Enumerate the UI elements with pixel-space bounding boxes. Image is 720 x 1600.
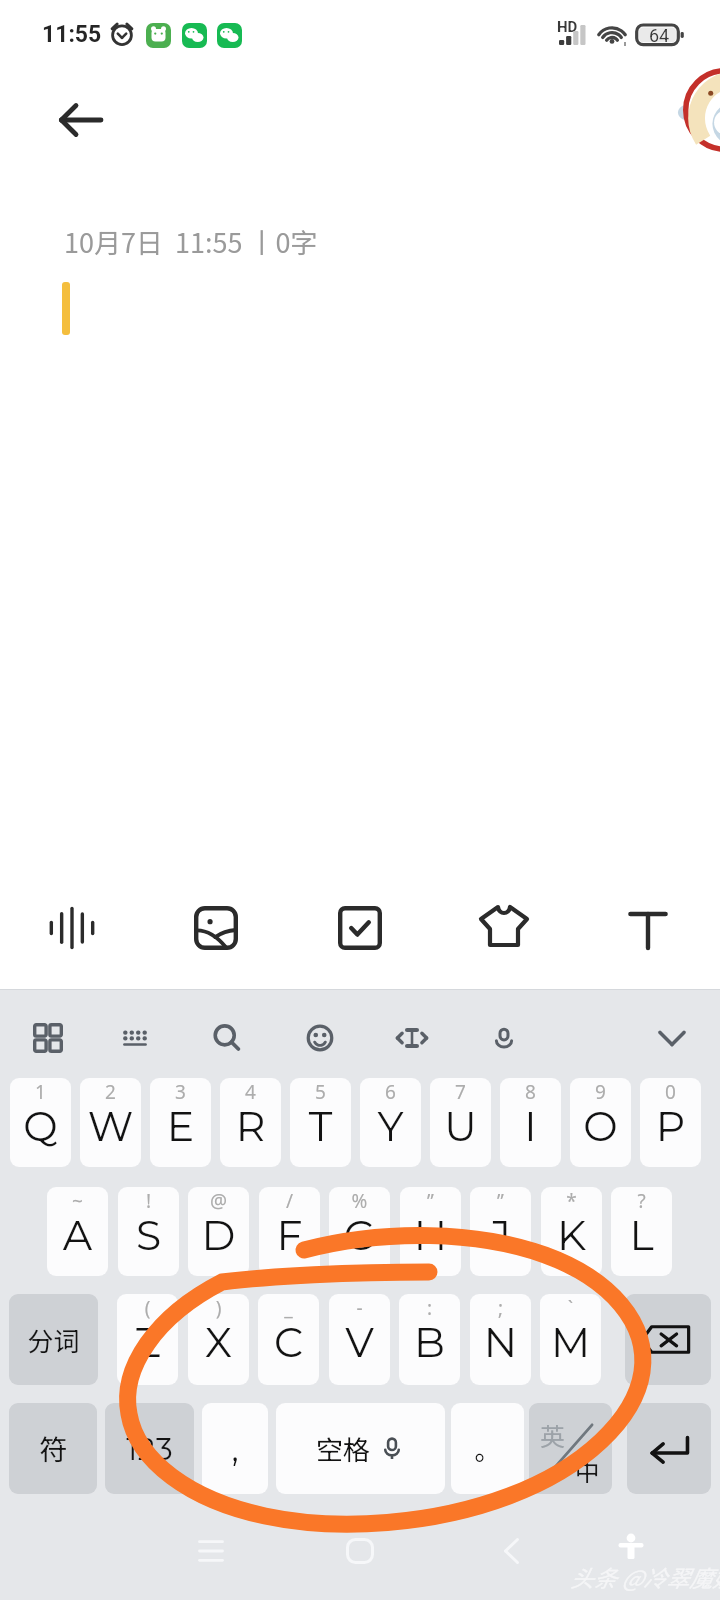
staticText: ” [400, 1188, 461, 1214]
button[interactable]: Text format [576, 888, 720, 968]
button[interactable]: Hide keyboard [650, 1016, 694, 1060]
button[interactable]: 空格 [276, 1403, 445, 1494]
button[interactable]: ? [611, 1187, 672, 1276]
button[interactable]: _ [258, 1294, 319, 1385]
button[interactable]: ) [188, 1294, 249, 1385]
staticText: P [640, 1101, 701, 1151]
button[interactable]: @ [188, 1187, 249, 1276]
button[interactable]: 。 [451, 1403, 524, 1494]
staticText: G [329, 1210, 390, 1260]
button[interactable]: ” [470, 1187, 531, 1276]
button[interactable]: ! [118, 1187, 179, 1276]
button[interactable]: Insert image [144, 888, 288, 968]
button[interactable]: Recent apps [181, 1521, 241, 1581]
staticText: 1 [10, 1079, 71, 1105]
staticText: 8 [500, 1079, 561, 1105]
button[interactable]: Todo list [288, 888, 432, 968]
staticText: H [400, 1210, 461, 1260]
button[interactable]: ( [117, 1294, 178, 1385]
button[interactable]: 5 [290, 1078, 351, 1167]
button[interactable]: 符 [9, 1403, 97, 1494]
staticText: E [150, 1101, 211, 1151]
staticText: % [329, 1188, 390, 1214]
button[interactable]: - [329, 1294, 390, 1385]
button[interactable]: Panels [26, 1016, 70, 1060]
staticText: X [188, 1317, 249, 1367]
staticText: @ [188, 1188, 249, 1214]
button[interactable]: ” [400, 1187, 461, 1276]
button[interactable]: : [399, 1294, 460, 1385]
button[interactable]: 3 [150, 1078, 211, 1167]
staticText: U [430, 1101, 491, 1151]
staticText: J [470, 1210, 531, 1260]
staticText: : [399, 1295, 460, 1321]
staticText: 4 [220, 1079, 281, 1105]
staticText: ) [188, 1295, 249, 1321]
button[interactable]: ; [470, 1294, 531, 1385]
button[interactable]: 4 [220, 1078, 281, 1167]
staticText: A [47, 1210, 108, 1260]
staticText: 64 [646, 25, 672, 46]
staticText: T [290, 1101, 351, 1151]
staticText: ~ [47, 1188, 108, 1214]
staticText: _ [258, 1295, 319, 1321]
staticText: - [329, 1295, 390, 1321]
staticText: 123 [126, 1430, 173, 1468]
button[interactable]: Search [205, 1016, 249, 1060]
staticText: 11:55 [42, 21, 102, 48]
staticText: D [188, 1210, 249, 1260]
staticText: HD [557, 18, 578, 36]
button[interactable]: Note skin [432, 888, 576, 968]
staticText: 中 [575, 1452, 601, 1488]
staticText: O [570, 1101, 631, 1151]
staticText: 5 [290, 1079, 351, 1105]
button[interactable]: 8 [500, 1078, 561, 1167]
staticText: W [80, 1101, 141, 1151]
staticText: / [259, 1188, 320, 1214]
button[interactable]: Back [40, 80, 120, 160]
staticText: ( [117, 1295, 178, 1321]
button[interactable]: 9 [570, 1078, 631, 1167]
staticText: ` [540, 1295, 601, 1321]
staticText: 10月7日 11:55 丨0字 [64, 222, 318, 261]
staticText: 0 [640, 1079, 701, 1105]
button[interactable]: Keyboard layout [113, 1016, 157, 1060]
button[interactable]: Voice note [0, 888, 144, 968]
button[interactable]: 0 [640, 1078, 701, 1167]
button[interactable]: Move cursor [390, 1016, 434, 1060]
button[interactable]: / [259, 1187, 320, 1276]
staticText: M [540, 1317, 601, 1367]
staticText: R [220, 1101, 281, 1151]
button[interactable]: ~ [47, 1187, 108, 1276]
staticText: L [611, 1210, 672, 1260]
staticText: I [500, 1101, 561, 1151]
button[interactable]: * [541, 1187, 602, 1276]
staticText: N [470, 1317, 531, 1367]
staticText: 3 [150, 1079, 211, 1105]
staticText: 头条 @冷翠魔妮 [570, 1560, 720, 1593]
staticText: B [399, 1317, 460, 1367]
button[interactable]: 6 [360, 1078, 421, 1167]
button[interactable]: Home [330, 1521, 390, 1581]
button[interactable]: Emoji [298, 1016, 342, 1060]
button[interactable]: 分词 [9, 1294, 98, 1385]
button[interactable]: 123 [105, 1403, 194, 1494]
button[interactable]: Switch language [529, 1403, 612, 1494]
staticText: 9 [570, 1079, 631, 1105]
button[interactable]: ` [540, 1294, 601, 1385]
button[interactable]: Voice input [482, 1016, 526, 1060]
staticText: Y [360, 1101, 421, 1151]
button[interactable]: , [202, 1403, 268, 1494]
button[interactable]: % [329, 1187, 390, 1276]
staticText: V [329, 1317, 390, 1367]
button[interactable]: 7 [430, 1078, 491, 1167]
staticText: ? [611, 1188, 672, 1214]
staticText: 6 [360, 1079, 421, 1105]
button[interactable]: 2 [80, 1078, 141, 1167]
button[interactable]: Enter [627, 1403, 711, 1494]
staticText: * [541, 1188, 602, 1214]
staticText: 空格 [316, 1429, 370, 1468]
button[interactable]: Backspace [625, 1294, 711, 1385]
button[interactable]: 1 [10, 1078, 71, 1167]
